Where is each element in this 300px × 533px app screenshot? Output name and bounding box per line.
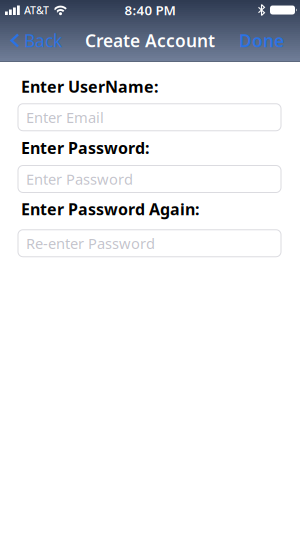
staticText: Re-enter Password — [26, 233, 155, 253]
staticText: Enter UserName: — [21, 76, 158, 97]
staticText: Enter Password — [26, 169, 133, 189]
staticText: Create Account — [85, 29, 215, 52]
button[interactable]: Re-enter Password — [18, 230, 281, 257]
staticText: AT&T — [24, 3, 49, 17]
button[interactable]: Enter Email — [18, 104, 281, 131]
button[interactable]: Enter Password — [18, 165, 281, 192]
staticText: Enter Email — [26, 107, 104, 127]
staticText: Enter Password Again: — [21, 198, 199, 220]
staticText: Enter Password: — [21, 137, 149, 158]
staticText: Back — [24, 29, 62, 52]
staticText: 8:40 PM — [124, 1, 175, 19]
button[interactable]: Done — [239, 29, 300, 52]
button[interactable]: Back — [0, 29, 62, 52]
staticText: Done — [239, 29, 284, 52]
